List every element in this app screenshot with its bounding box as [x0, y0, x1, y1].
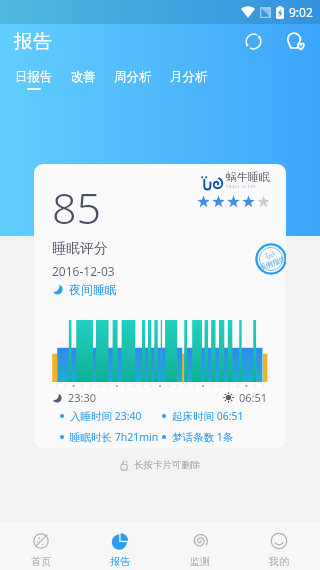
- button[interactable]: 首页: [3, 523, 79, 570]
- button[interactable]: 85: [34, 164, 286, 448]
- staticText: 23:30: [68, 390, 97, 405]
- button[interactable]: 月分析: [161, 64, 217, 95]
- staticText: 夜间睡眠: [69, 282, 117, 297]
- button[interactable]: 监测: [162, 523, 238, 570]
- staticText: 蜗牛睡眠: [226, 170, 270, 184]
- staticText: 日报告: [15, 69, 53, 85]
- staticText: 入睡时间 23:40: [70, 409, 142, 423]
- button[interactable]: 报告: [82, 523, 158, 570]
- staticText: 睡眠时长 7h21min: [70, 430, 159, 444]
- button[interactable]: 周分析: [105, 64, 161, 95]
- staticText: 报告: [110, 555, 130, 568]
- staticText: 长按卡片可删除: [134, 459, 201, 471]
- staticText: 梦话条数 1条: [172, 430, 234, 444]
- staticText: 月分析: [170, 69, 208, 85]
- staticText: 首页: [31, 555, 51, 568]
- button[interactable]: Feedback: [280, 26, 311, 57]
- staticText: 报告: [14, 30, 52, 54]
- button[interactable]: Refresh: [238, 26, 269, 57]
- button[interactable]: 我的: [241, 523, 317, 570]
- staticText: 我的: [269, 555, 289, 568]
- staticText: 睡眠评分: [52, 240, 108, 258]
- staticText: 起床时间 06:51: [172, 409, 244, 423]
- staticText: 监测: [190, 555, 210, 568]
- staticText: 9:02: [289, 4, 313, 20]
- button[interactable]: 日报告: [6, 64, 62, 95]
- staticText: 06:51: [239, 390, 268, 405]
- button[interactable]: 改善: [62, 64, 105, 95]
- staticText: 85: [52, 178, 102, 237]
- staticText: 改善: [71, 69, 96, 85]
- staticText: S N A I L S L E E P: [226, 184, 256, 189]
- staticText: 2016-12-03: [52, 263, 115, 279]
- staticText: 示例报告: [258, 254, 286, 272]
- staticText: 周分析: [114, 69, 152, 85]
